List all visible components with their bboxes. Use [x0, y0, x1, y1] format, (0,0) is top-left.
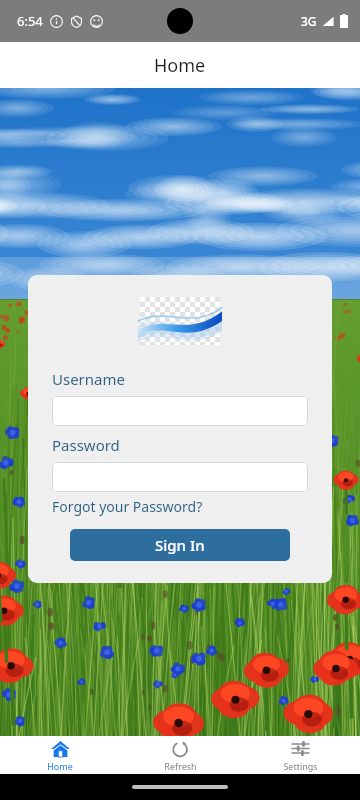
staticText: 3G [301, 13, 317, 29]
staticText: Refresh [164, 760, 197, 772]
staticText: Username [52, 369, 125, 389]
button[interactable]: Sign In [70, 529, 290, 561]
button[interactable]: Home [0, 736, 120, 774]
staticText: Home [47, 760, 73, 772]
staticText: Sign In [155, 535, 205, 555]
staticText: Home [154, 53, 206, 78]
button[interactable]: Settings [240, 736, 360, 774]
staticText: Password [52, 435, 120, 455]
staticText: 6:54 [17, 12, 43, 30]
staticText: Forgot your Password? [52, 497, 203, 516]
button[interactable]: Refresh [120, 736, 240, 774]
staticText: Settings [283, 760, 318, 772]
button[interactable] [52, 396, 308, 426]
button[interactable] [52, 462, 308, 492]
button[interactable]: Forgot your Password? [52, 497, 203, 516]
